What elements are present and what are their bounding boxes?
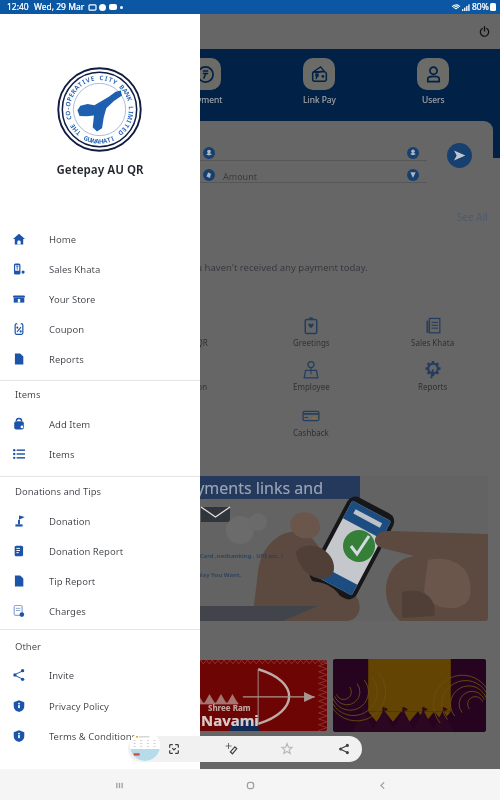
button[interactable]: Pay by QR bbox=[144, 317, 234, 348]
staticText: Items bbox=[49, 448, 75, 461]
staticText: QR Code bbox=[74, 94, 109, 106]
staticText: Greetings bbox=[293, 337, 330, 348]
staticText: Sales Khata bbox=[49, 263, 101, 276]
button[interactable]: Employee bbox=[266, 361, 356, 392]
staticText: Add Item bbox=[49, 418, 91, 431]
staticText: Privacy Policy bbox=[49, 700, 109, 713]
button[interactable]: Payment bbox=[170, 58, 240, 106]
staticText: See All bbox=[457, 210, 488, 224]
staticText: Other bbox=[15, 640, 42, 653]
other: Crop bbox=[168, 743, 180, 755]
button[interactable]: Reports bbox=[388, 361, 478, 392]
button[interactable]: Invite bbox=[0, 660, 200, 690]
button[interactable] bbox=[333, 659, 486, 732]
button[interactable]: Items bbox=[0, 439, 200, 469]
button[interactable]: Coupon bbox=[0, 314, 200, 344]
button[interactable]: Greetings bbox=[266, 317, 356, 348]
staticText: 12:40 bbox=[7, 1, 29, 13]
button[interactable]: Store bbox=[144, 407, 234, 438]
other: Draw bbox=[225, 743, 237, 755]
staticText: Reports bbox=[49, 353, 84, 366]
staticText: Donation bbox=[49, 515, 91, 528]
button[interactable]: Back bbox=[369, 772, 395, 798]
staticText: Link Pay bbox=[303, 94, 336, 106]
button[interactable]: Tip Report bbox=[0, 566, 200, 596]
staticText: Amount bbox=[223, 170, 257, 182]
staticText: Collection bbox=[170, 381, 208, 392]
other: Tag bbox=[281, 743, 293, 755]
staticText: Employee bbox=[293, 381, 330, 392]
staticText: Shree Ram bbox=[208, 702, 251, 713]
button[interactable]: Logout bbox=[478, 25, 491, 38]
button[interactable]: Reports bbox=[0, 344, 200, 374]
button[interactable]: Users bbox=[398, 58, 468, 106]
button[interactable]: Shree Ram bbox=[174, 660, 327, 731]
button[interactable]: Collection bbox=[144, 361, 234, 392]
button[interactable]: Recents bbox=[106, 772, 132, 798]
staticText: Tip Report bbox=[49, 575, 96, 588]
button[interactable]: Charges bbox=[0, 596, 200, 626]
staticText: Items bbox=[15, 388, 41, 401]
staticText: Donation Report bbox=[49, 545, 124, 558]
button[interactable]: Donation Report bbox=[0, 536, 200, 566]
button[interactable]: Send bbox=[447, 143, 472, 168]
staticText: Getepay AU QR bbox=[0, 162, 200, 178]
button[interactable]: Home bbox=[237, 772, 263, 798]
staticText: Coupon bbox=[49, 323, 85, 336]
staticText: Create payments links and bbox=[124, 477, 324, 499]
staticText: Charges bbox=[49, 605, 86, 618]
button[interactable]: Add Item bbox=[0, 409, 200, 439]
button[interactable]: Create payments links and bbox=[10, 476, 488, 621]
staticText: Get Paid In The Way You Want. bbox=[150, 571, 242, 579]
staticText: 80% bbox=[472, 1, 489, 13]
staticText: Users bbox=[422, 94, 445, 106]
button[interactable]: Donation bbox=[0, 506, 200, 536]
staticText: Home bbox=[49, 233, 77, 246]
button[interactable]: See All bbox=[452, 209, 492, 225]
staticText: Sales Khata bbox=[411, 337, 455, 348]
staticText: Sorry! you haven't received any payment … bbox=[157, 261, 368, 274]
button[interactable]: Privacy Policy bbox=[0, 691, 200, 721]
button[interactable] bbox=[130, 731, 160, 761]
staticText: Reports bbox=[418, 381, 448, 392]
staticText: Pay by QR bbox=[170, 337, 208, 348]
button[interactable]: Cashback bbox=[266, 407, 356, 438]
staticText: Navami bbox=[201, 710, 259, 730]
button[interactable]: Link Pay bbox=[284, 58, 354, 106]
button[interactable]: Sales Khata bbox=[0, 254, 200, 284]
staticText: Payment bbox=[187, 94, 223, 106]
button[interactable]: Home bbox=[0, 224, 200, 254]
staticText: Wed, 29 Mar bbox=[34, 1, 85, 13]
button[interactable]: Your Store bbox=[0, 284, 200, 314]
button[interactable]: Terms & Conditions bbox=[0, 721, 200, 751]
staticText: Cashback bbox=[293, 427, 329, 438]
staticText: Donations and Tips bbox=[15, 485, 102, 498]
staticText: Invite bbox=[49, 669, 75, 682]
staticText: Terms & Conditions bbox=[49, 730, 137, 743]
other: Share bbox=[338, 743, 350, 755]
staticText: ( Credit Card , Debit Card ,nethanking ,… bbox=[140, 552, 283, 560]
staticText: Your Store bbox=[49, 293, 96, 306]
button[interactable]: Sales Khata bbox=[388, 317, 478, 348]
button[interactable]: QR Code bbox=[56, 58, 126, 106]
